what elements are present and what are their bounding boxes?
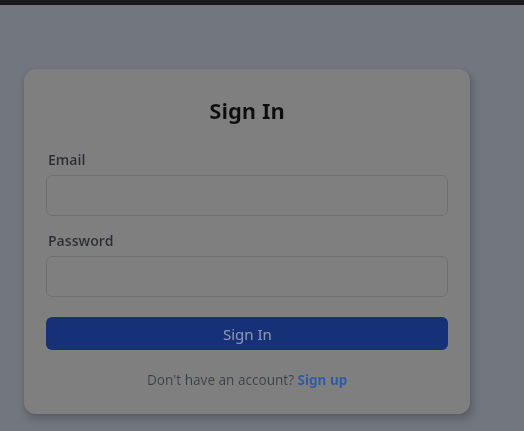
staticText: Sign In	[46, 95, 448, 125]
staticText: Password	[48, 231, 114, 250]
button[interactable]: Don't have an account? Sign up	[46, 371, 448, 389]
button[interactable]	[46, 256, 448, 297]
staticText: Sign In	[223, 324, 272, 344]
button[interactable]	[46, 175, 448, 216]
staticText: Email	[48, 150, 86, 169]
button[interactable]: Sign In	[46, 317, 448, 350]
staticText: Don't have an account? Sign up	[147, 371, 348, 389]
